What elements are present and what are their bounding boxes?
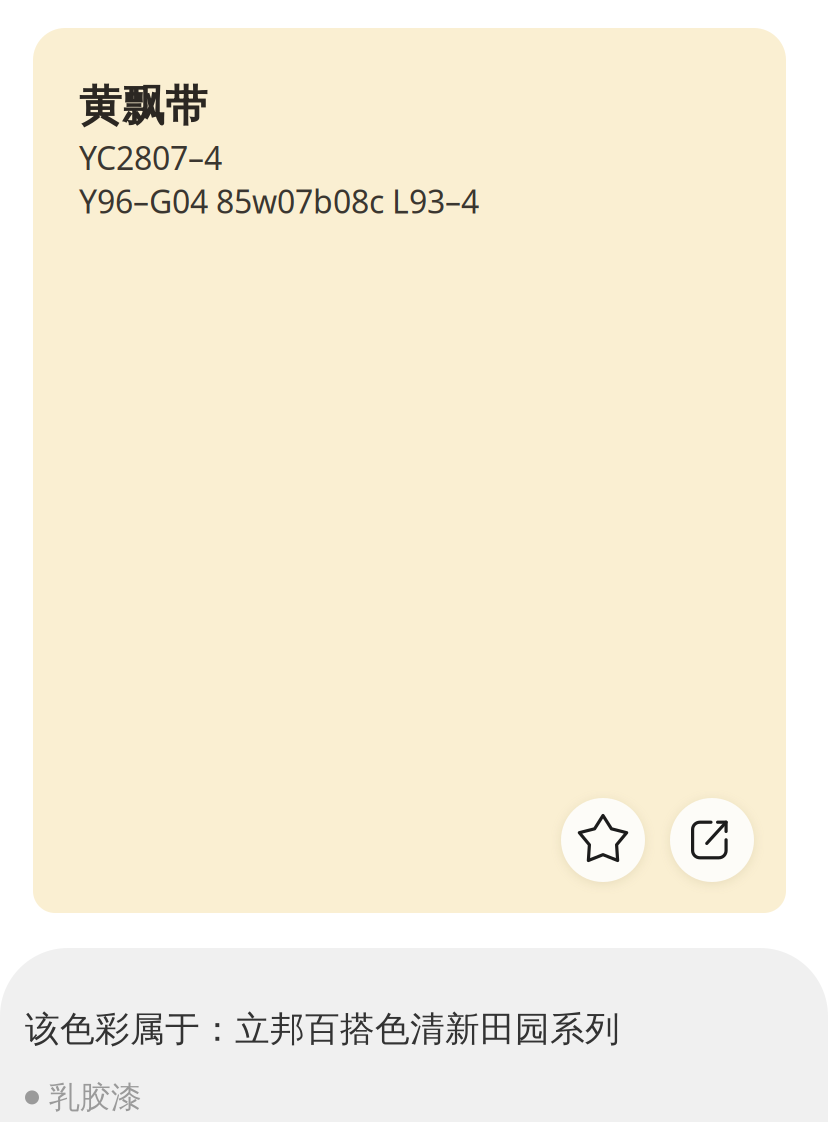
staticText: 该色彩属于：立邦百搭色清新田园系列: [25, 1008, 620, 1051]
staticText: 黄飘带: [79, 80, 208, 132]
button[interactable]: 收藏: [561, 798, 645, 882]
staticText: YC2807–4: [79, 136, 222, 179]
staticText: Y96–G04 85w07b08c L93–4: [79, 180, 479, 222]
staticText: 乳胶漆: [49, 1079, 142, 1116]
button[interactable]: 分享: [670, 798, 754, 882]
